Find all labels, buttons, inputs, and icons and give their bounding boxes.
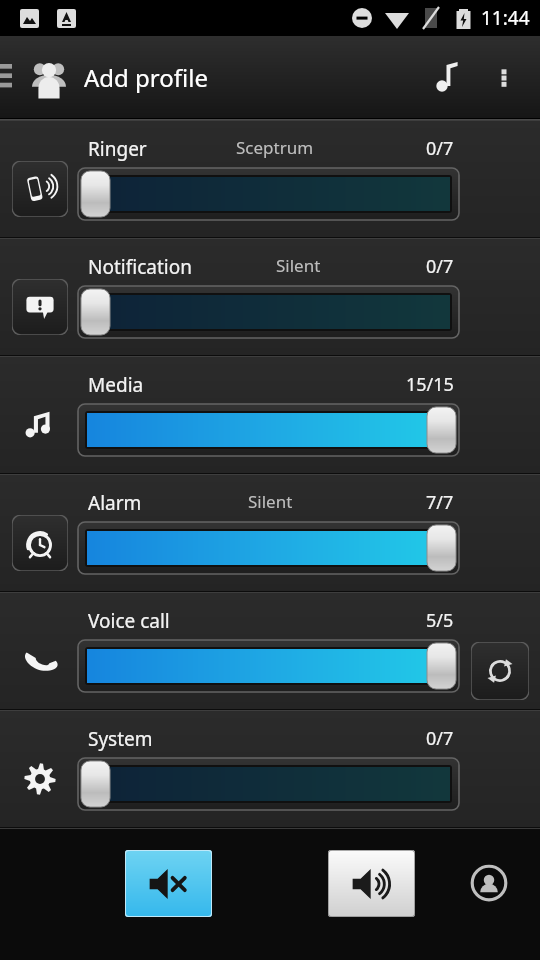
- button[interactable]: Voice call: [12, 633, 68, 689]
- staticText: Alarm: [88, 490, 142, 516]
- staticText: Silent: [248, 490, 293, 513]
- staticText: Add profile: [84, 61, 208, 94]
- button[interactable]: More options: [480, 53, 528, 101]
- staticText: Sceptrum: [236, 136, 314, 159]
- staticText: Media: [88, 372, 144, 398]
- button[interactable]: Ringer: [0, 120, 540, 238]
- button[interactable]: Headset: [466, 860, 512, 906]
- button[interactable]: [78, 758, 459, 810]
- button[interactable]: Media: [12, 397, 68, 453]
- button[interactable]: [78, 168, 459, 220]
- button[interactable]: [78, 404, 459, 456]
- button[interactable]: Voice call: [0, 592, 540, 710]
- button[interactable]: Speaker on: [328, 850, 415, 917]
- button[interactable]: [78, 522, 459, 574]
- staticText: Ringer: [88, 136, 147, 162]
- staticText: 15/15: [406, 372, 454, 397]
- staticText: Notification: [88, 254, 192, 280]
- button[interactable]: Mute: [125, 850, 212, 917]
- button[interactable]: Alarm: [0, 474, 540, 592]
- button[interactable]: Ringtone: [424, 53, 472, 101]
- button[interactable]: System: [12, 751, 68, 807]
- button[interactable]: Notification: [0, 238, 540, 356]
- staticText: 0/7: [426, 254, 454, 279]
- button[interactable]: Media: [0, 356, 540, 474]
- staticText: Voice call: [88, 608, 170, 634]
- button[interactable]: [78, 640, 459, 692]
- staticText: 0/7: [426, 726, 454, 751]
- button[interactable]: Ringer: [12, 161, 68, 217]
- staticText: 11:44: [481, 5, 530, 31]
- button[interactable]: Sync volumes: [471, 642, 529, 700]
- staticText: 0/7: [426, 136, 454, 161]
- staticText: 5/5: [426, 608, 454, 633]
- button[interactable]: [78, 286, 459, 338]
- staticText: 7/7: [426, 490, 454, 515]
- staticText: Silent: [276, 254, 321, 277]
- button[interactable]: System: [0, 710, 540, 828]
- button[interactable]: Alarm: [12, 515, 68, 571]
- button[interactable]: Notification: [12, 279, 68, 335]
- staticText: System: [88, 726, 153, 752]
